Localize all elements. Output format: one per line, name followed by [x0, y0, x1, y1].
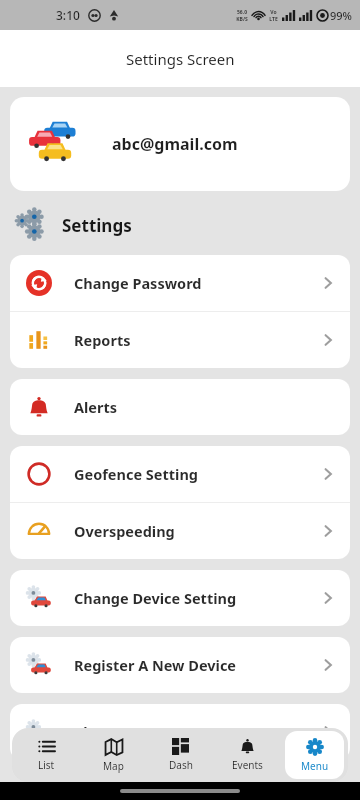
staticText: Reports: [74, 330, 131, 350]
staticText: Overspeeding: [74, 521, 175, 541]
staticText: abc@gmail.com: [112, 133, 238, 155]
button[interactable]: List: [16, 731, 76, 779]
staticText: Vo LTE: [269, 9, 278, 22]
button[interactable]: Dash: [151, 731, 210, 779]
staticText: Dash: [169, 758, 193, 772]
staticText: Settings Screen: [126, 49, 235, 69]
staticText: Change Language: [74, 722, 204, 742]
staticText: Change Password: [74, 273, 202, 293]
button[interactable]: Geofence Setting: [10, 446, 350, 502]
button[interactable]: Register A New Device: [10, 637, 350, 693]
staticText: Register A New Device: [74, 655, 237, 675]
button[interactable]: Change Password: [10, 255, 350, 311]
button[interactable]: Reports: [10, 312, 350, 368]
button[interactable]: Menu: [285, 731, 344, 779]
staticText: 56.0 KB/S: [236, 9, 248, 22]
staticText: 99%: [330, 8, 352, 23]
staticText: Events: [232, 758, 263, 772]
staticText: Geofence Setting: [74, 464, 198, 484]
button[interactable]: abc@gmail.com: [10, 97, 350, 191]
staticText: 3:10: [56, 7, 80, 23]
button[interactable]: Change Language: [10, 704, 350, 760]
staticText: Settings: [62, 214, 132, 237]
button[interactable]: Change Device Setting: [10, 570, 350, 626]
other: Menu: [306, 738, 324, 756]
button[interactable]: Events: [218, 731, 277, 779]
button[interactable]: Map: [84, 731, 143, 779]
staticText: Menu: [301, 759, 329, 773]
staticText: Change Device Setting: [74, 588, 237, 608]
button[interactable]: Overspeeding: [10, 503, 350, 559]
staticText: Map: [103, 759, 124, 773]
staticText: Alerts: [74, 397, 118, 417]
staticText: List: [38, 758, 55, 772]
button[interactable]: Alerts: [10, 379, 350, 435]
